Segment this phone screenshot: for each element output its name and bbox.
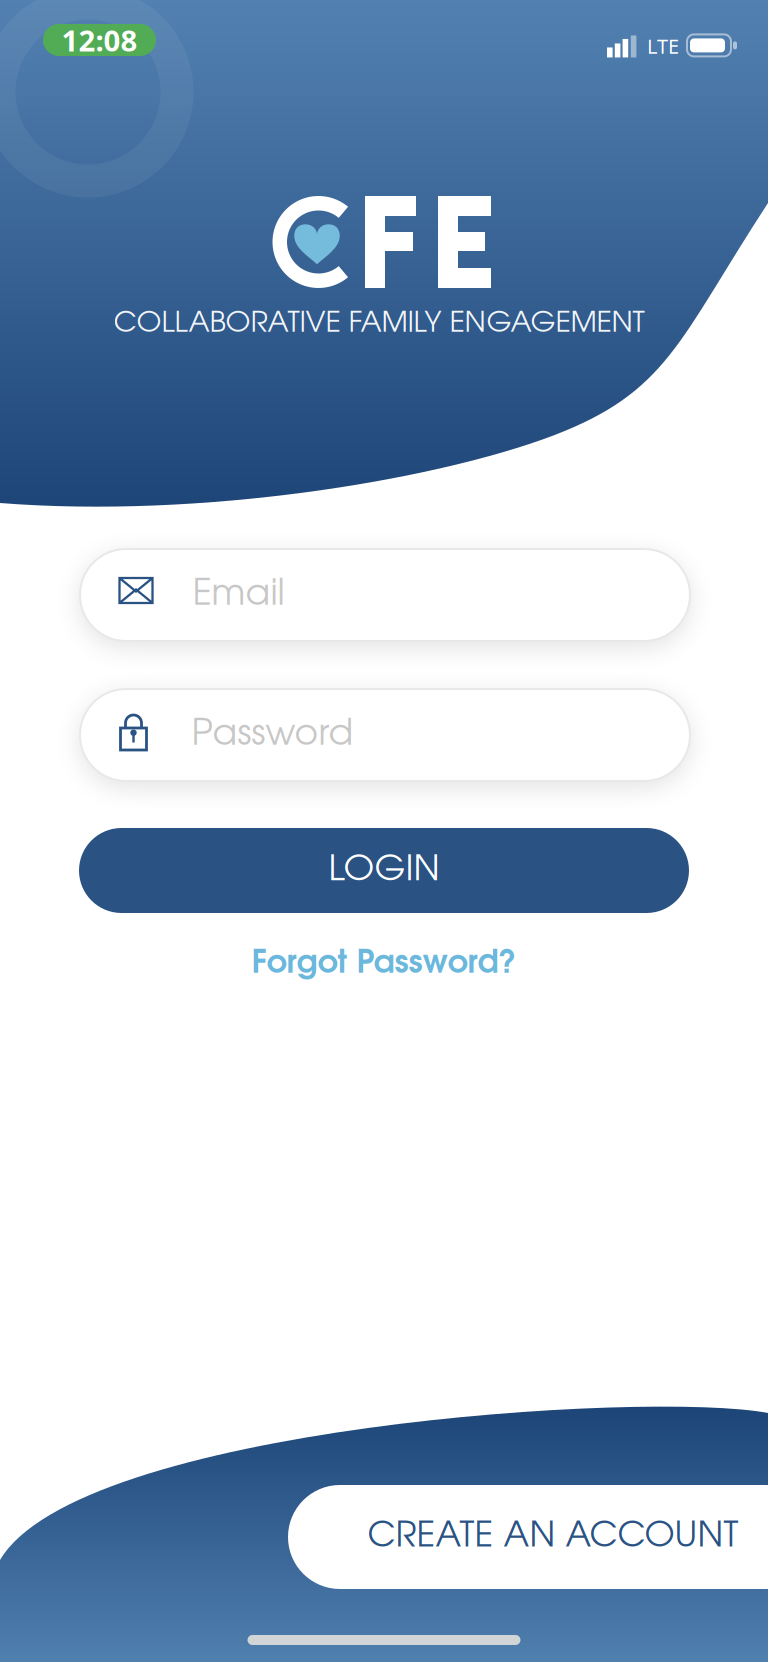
staticText: Password <box>191 718 353 752</box>
staticText: LTE <box>647 33 679 59</box>
staticText: CREATE AN ACCOUNT <box>367 1521 738 1553</box>
button[interactable]: CREATE AN ACCOUNT <box>288 1485 768 1589</box>
staticText: COLLABORATIVE FAMILY ENGAGEMENT <box>113 311 644 337</box>
button[interactable]: LOGIN <box>79 828 689 913</box>
staticText: Forgot Password? <box>251 949 516 979</box>
staticText: LOGIN <box>328 854 439 887</box>
button[interactable]: Email <box>80 549 690 641</box>
button[interactable]: Forgot Password? <box>251 949 516 979</box>
staticText: 12:08 <box>61 20 137 59</box>
staticText: Email <box>192 578 284 612</box>
button[interactable]: Password <box>80 689 690 781</box>
